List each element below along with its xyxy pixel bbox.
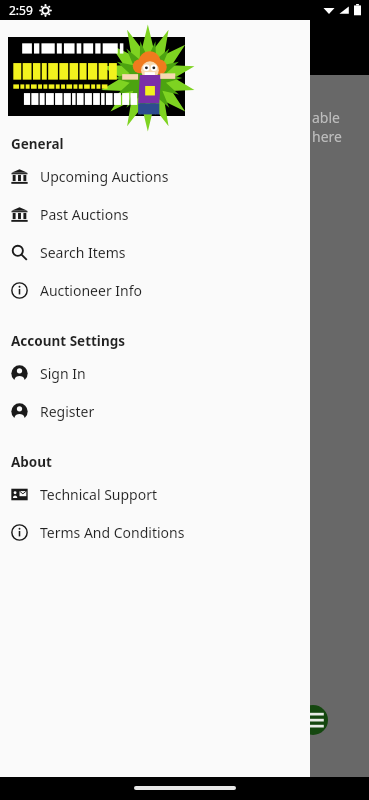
staticText: General (11, 135, 64, 153)
button[interactable]: Upcoming Auctions (0, 157, 310, 195)
staticText: Upcoming Auctions (40, 167, 169, 186)
button[interactable]: Register (0, 392, 310, 430)
staticText: Auctioneer Info (40, 281, 143, 300)
button[interactable]: Past Auctions (0, 195, 310, 233)
button[interactable]: Sign In (0, 354, 310, 392)
staticText: Search Items (40, 243, 126, 262)
other: Settings notification (40, 5, 51, 16)
staticText: Account Settings (11, 332, 125, 350)
staticText: able here (312, 108, 369, 146)
staticText: Past Auctions (40, 205, 129, 224)
staticText: Terms And Conditions (40, 523, 185, 542)
staticText: Register (40, 402, 95, 421)
button[interactable]: Search Items (0, 233, 310, 271)
staticText: Sign In (40, 364, 86, 383)
staticText: About (11, 453, 52, 471)
button[interactable]: Terms And Conditions (0, 513, 310, 551)
staticText: Technical Support (40, 485, 158, 504)
button[interactable] (8, 37, 185, 116)
button[interactable]: Auctioneer Info (0, 271, 310, 309)
staticText: 2:59 (9, 2, 33, 18)
button[interactable]: Technical Support (0, 475, 310, 513)
